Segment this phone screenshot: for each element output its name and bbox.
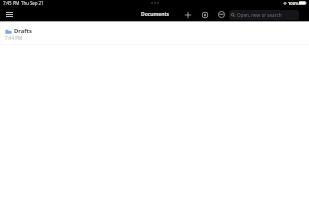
staticText: 100% <box>288 1 299 7</box>
button[interactable]: Open, new or search <box>229 10 299 20</box>
staticText: Open, new or search <box>237 12 282 18</box>
staticText: Drafts <box>14 27 32 35</box>
staticText: 7:45 PM <box>3 0 20 6</box>
button[interactable]: New document <box>182 9 193 20</box>
button[interactable]: Account <box>216 9 227 20</box>
staticText: Thu Sep 21 <box>21 0 44 6</box>
button[interactable]: Scan document <box>199 9 210 20</box>
button[interactable]: Drafts <box>0 22 309 44</box>
staticText: 7:44 PM <box>5 35 23 41</box>
button[interactable]: Menu <box>3 9 15 19</box>
staticText: Documents <box>141 11 169 18</box>
